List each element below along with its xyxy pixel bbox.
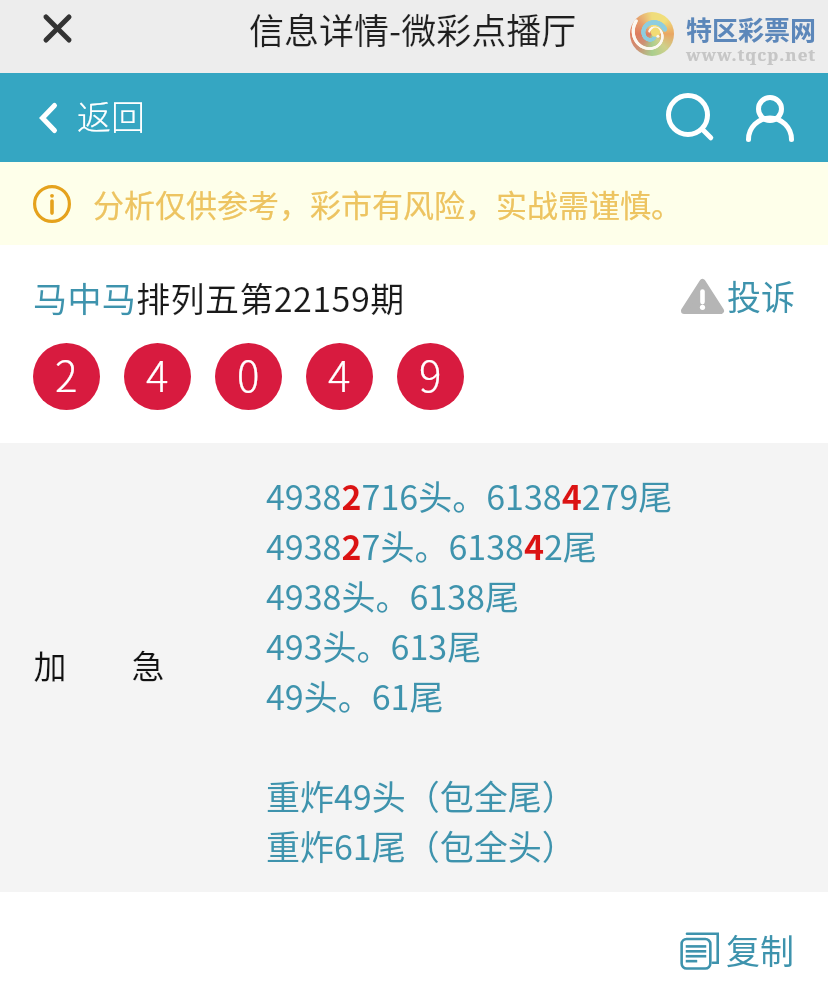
- staticText: 复制: [726, 925, 794, 974]
- staticText: 投诉: [727, 271, 795, 320]
- staticText: 返回: [77, 91, 145, 140]
- button[interactable]: Account: [739, 91, 801, 153]
- button[interactable]: 4: [124, 343, 191, 410]
- button[interactable]: 特区彩票网: [630, 12, 817, 73]
- staticText: 重炸49头（包全尾）: [266, 771, 576, 821]
- button[interactable]: 4: [306, 343, 373, 410]
- button[interactable]: Close: [28, 0, 86, 57]
- staticText: 4: [328, 343, 351, 404]
- staticText: 信息详情-微彩点播厅: [249, 3, 577, 54]
- staticText: 9: [419, 343, 442, 404]
- staticText: 特区彩票网: [686, 10, 817, 48]
- staticText: 重炸61尾（包全头）: [266, 821, 576, 871]
- button[interactable]: 返回: [40, 73, 145, 162]
- staticText: 2: [55, 343, 78, 404]
- staticText: 4: [146, 343, 169, 404]
- staticText: 49头。61尾: [266, 671, 444, 721]
- button[interactable]: 9: [397, 343, 464, 410]
- staticText: 49382716头。61384279尾: [266, 471, 673, 521]
- button[interactable]: 投诉: [681, 272, 795, 321]
- staticText: 493头。613尾: [266, 621, 482, 671]
- button[interactable]: 0: [215, 343, 282, 410]
- staticText: 0: [237, 343, 260, 404]
- staticText: 分析仅供参考，彩市有风险，实战需谨慎。: [93, 181, 682, 226]
- button[interactable]: Search: [659, 88, 721, 150]
- staticText: 4938头。6138尾: [266, 571, 519, 621]
- staticText: 加急: [1, 641, 197, 689]
- staticText: www.tqcp.net: [686, 43, 817, 66]
- button[interactable]: 2: [33, 343, 100, 410]
- button[interactable]: 马中马排列五第22159期: [33, 273, 405, 322]
- staticText: 493827头。613842尾: [266, 521, 597, 571]
- button[interactable]: 复制: [680, 926, 794, 975]
